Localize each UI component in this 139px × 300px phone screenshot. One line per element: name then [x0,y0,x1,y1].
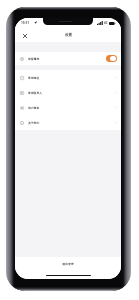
staticText: 退出登录 [62,262,74,266]
staticText: 常用联系人 [28,91,42,95]
button[interactable]: 常用联系人 [15,85,121,100]
staticText: 19:31 [21,21,29,25]
button[interactable]: Close [19,30,30,41]
staticText: 用户服务 [28,106,40,110]
staticText: 设置 [65,33,72,37]
button[interactable]: 常用地址 [15,70,121,85]
button[interactable]: 用户服务 [15,100,121,115]
button[interactable]: 退出登录 [15,257,121,271]
button[interactable]: 关于我们 [15,115,121,130]
staticText: 常用地址 [28,76,40,80]
button[interactable]: Toggle voice broadcast [106,55,117,62]
staticText: 4G [104,21,108,25]
button[interactable]: 语音播报 [15,52,121,65]
staticText: 关于我们 [28,121,40,125]
staticText: 语音播报 [28,57,40,61]
